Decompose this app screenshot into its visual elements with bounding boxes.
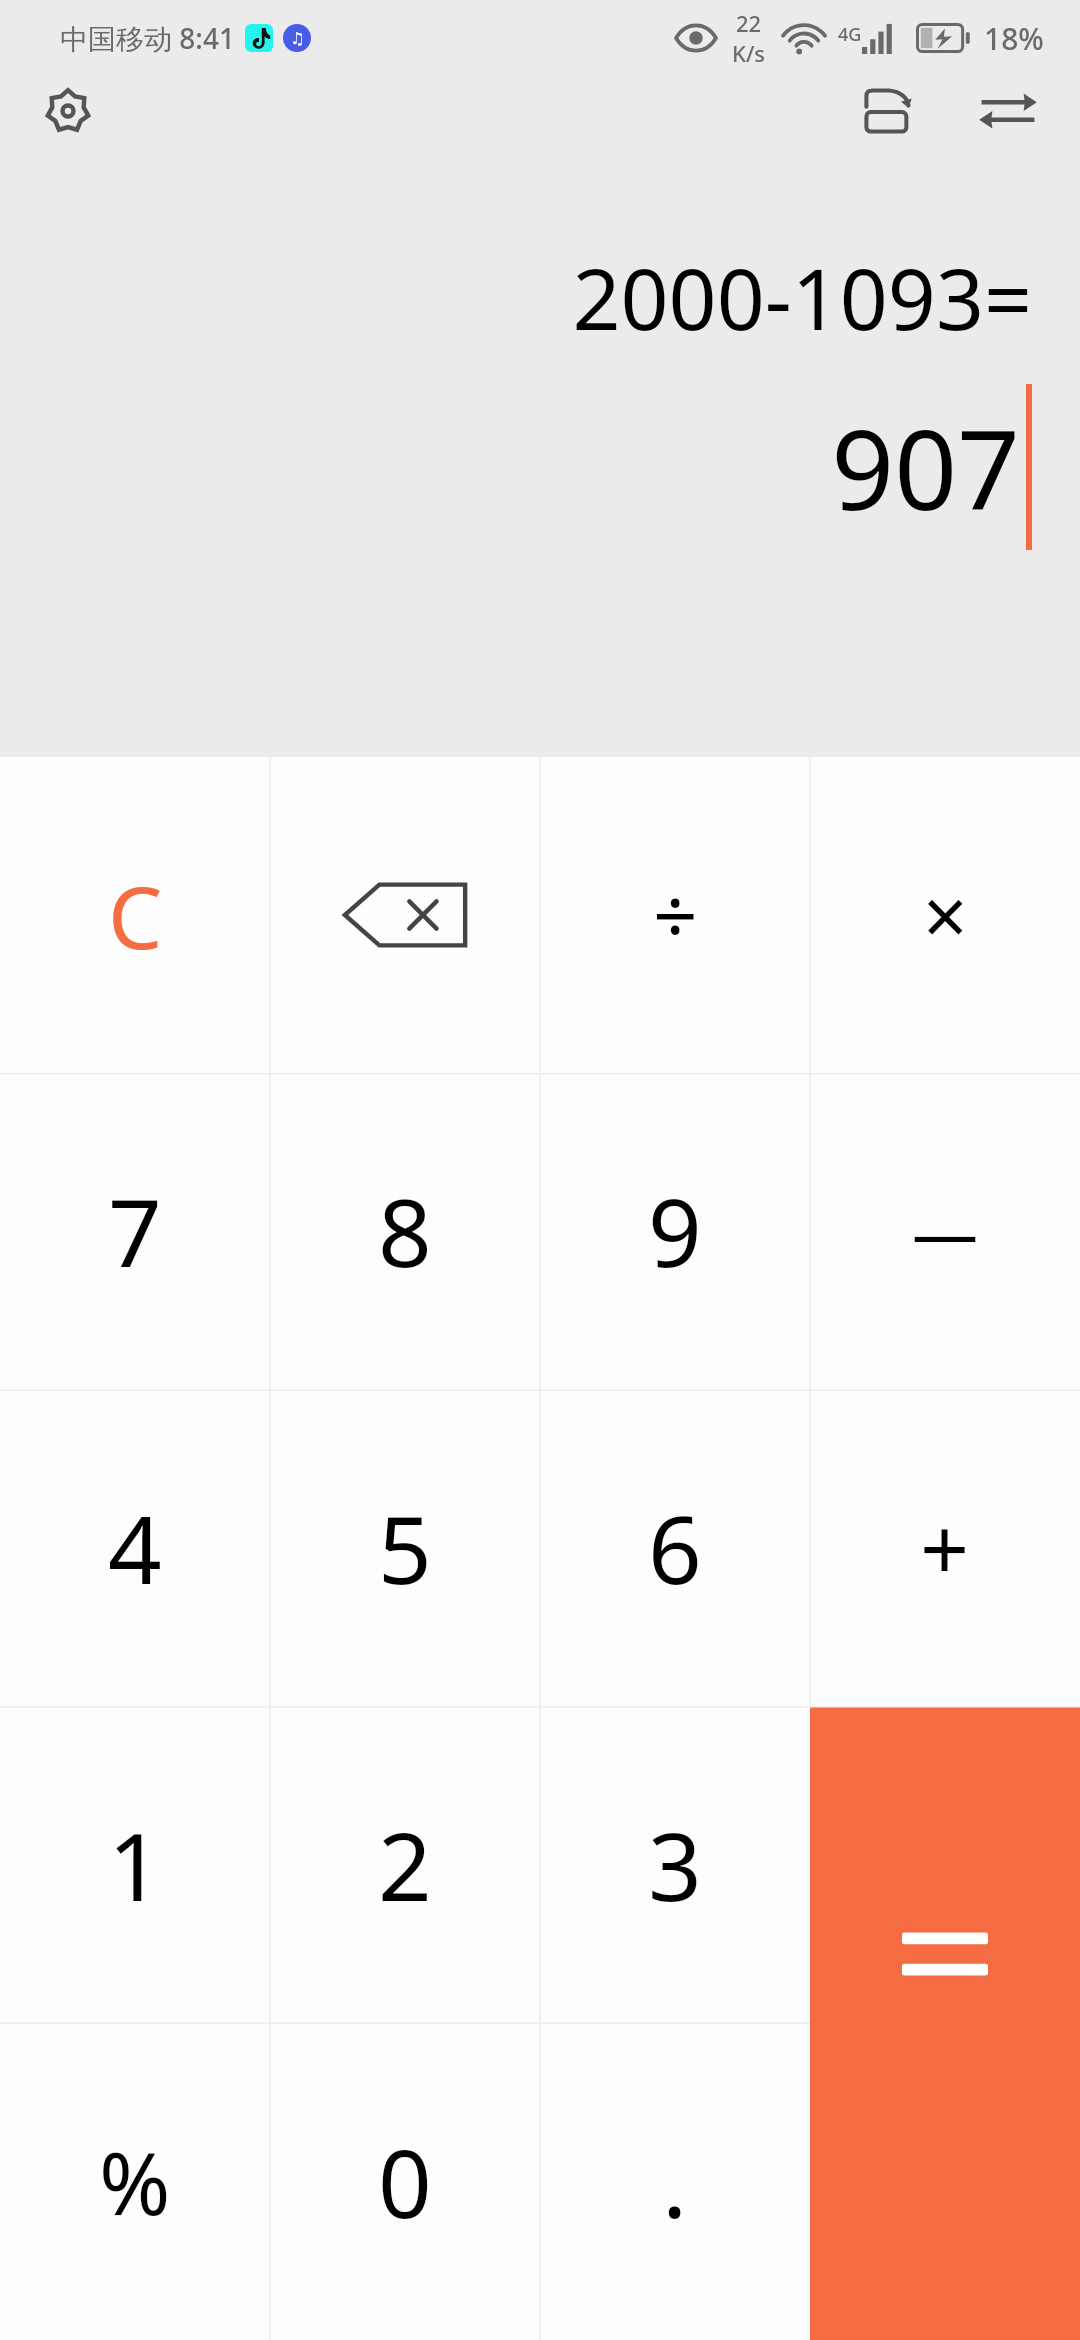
staticText: 18% — [984, 18, 1044, 59]
button[interactable]: + — [810, 1389, 1080, 1706]
button[interactable]: 9 — [540, 1073, 810, 1389]
staticText: 5 — [378, 1484, 432, 1612]
button[interactable]: ÷ — [540, 757, 810, 1073]
button[interactable]: Unit converter — [960, 63, 1056, 159]
staticText: 2000-1093= — [572, 240, 1032, 354]
staticText: — — [912, 1186, 978, 1276]
button[interactable]: Equals — [810, 1706, 1080, 2023]
button[interactable]: 6 — [540, 1389, 810, 1706]
staticText: ÷ — [653, 862, 698, 968]
button[interactable]: 1 — [0, 1706, 270, 2023]
staticText: 7 — [108, 1167, 162, 1295]
staticText: 9 — [648, 1167, 702, 1295]
staticText: C — [108, 857, 163, 974]
button[interactable]: — — [810, 1073, 1080, 1389]
staticText: 1 — [108, 1801, 162, 1929]
staticText: 2 — [378, 1801, 432, 1929]
button[interactable]: 5 — [270, 1389, 540, 1706]
button[interactable]: . — [540, 2023, 810, 2340]
button[interactable]: 0 — [270, 2023, 540, 2340]
staticText: ♫ — [290, 29, 305, 48]
staticText: 4 — [108, 1484, 162, 1612]
staticText: K/s — [732, 38, 766, 68]
staticText: . — [662, 2118, 688, 2246]
staticText: 4G — [838, 22, 862, 47]
staticText: 22 — [736, 8, 762, 38]
button[interactable]: 3 — [540, 1706, 810, 2023]
button[interactable]: 4 — [0, 1389, 270, 1706]
button[interactable]: C — [0, 757, 270, 1073]
staticText: 6 — [648, 1484, 702, 1612]
button[interactable]: 8 — [270, 1073, 540, 1389]
button[interactable]: History — [840, 63, 936, 159]
button[interactable]: × — [810, 757, 1080, 1073]
staticText: 3 — [648, 1801, 702, 1929]
staticText: 中国移动 8:41 — [60, 19, 235, 57]
staticText: % — [99, 2123, 171, 2240]
staticText: 0 — [378, 2118, 432, 2246]
button[interactable]: 2 — [270, 1706, 540, 2023]
staticText: × — [923, 862, 968, 968]
button[interactable]: 7 — [0, 1073, 270, 1389]
button[interactable]: Settings — [20, 63, 116, 159]
staticText: 907 — [831, 392, 1020, 542]
button[interactable]: % — [0, 2023, 270, 2340]
button[interactable]: Backspace — [270, 757, 540, 1073]
staticText: + — [920, 1489, 970, 1606]
staticText: 8 — [378, 1167, 432, 1295]
